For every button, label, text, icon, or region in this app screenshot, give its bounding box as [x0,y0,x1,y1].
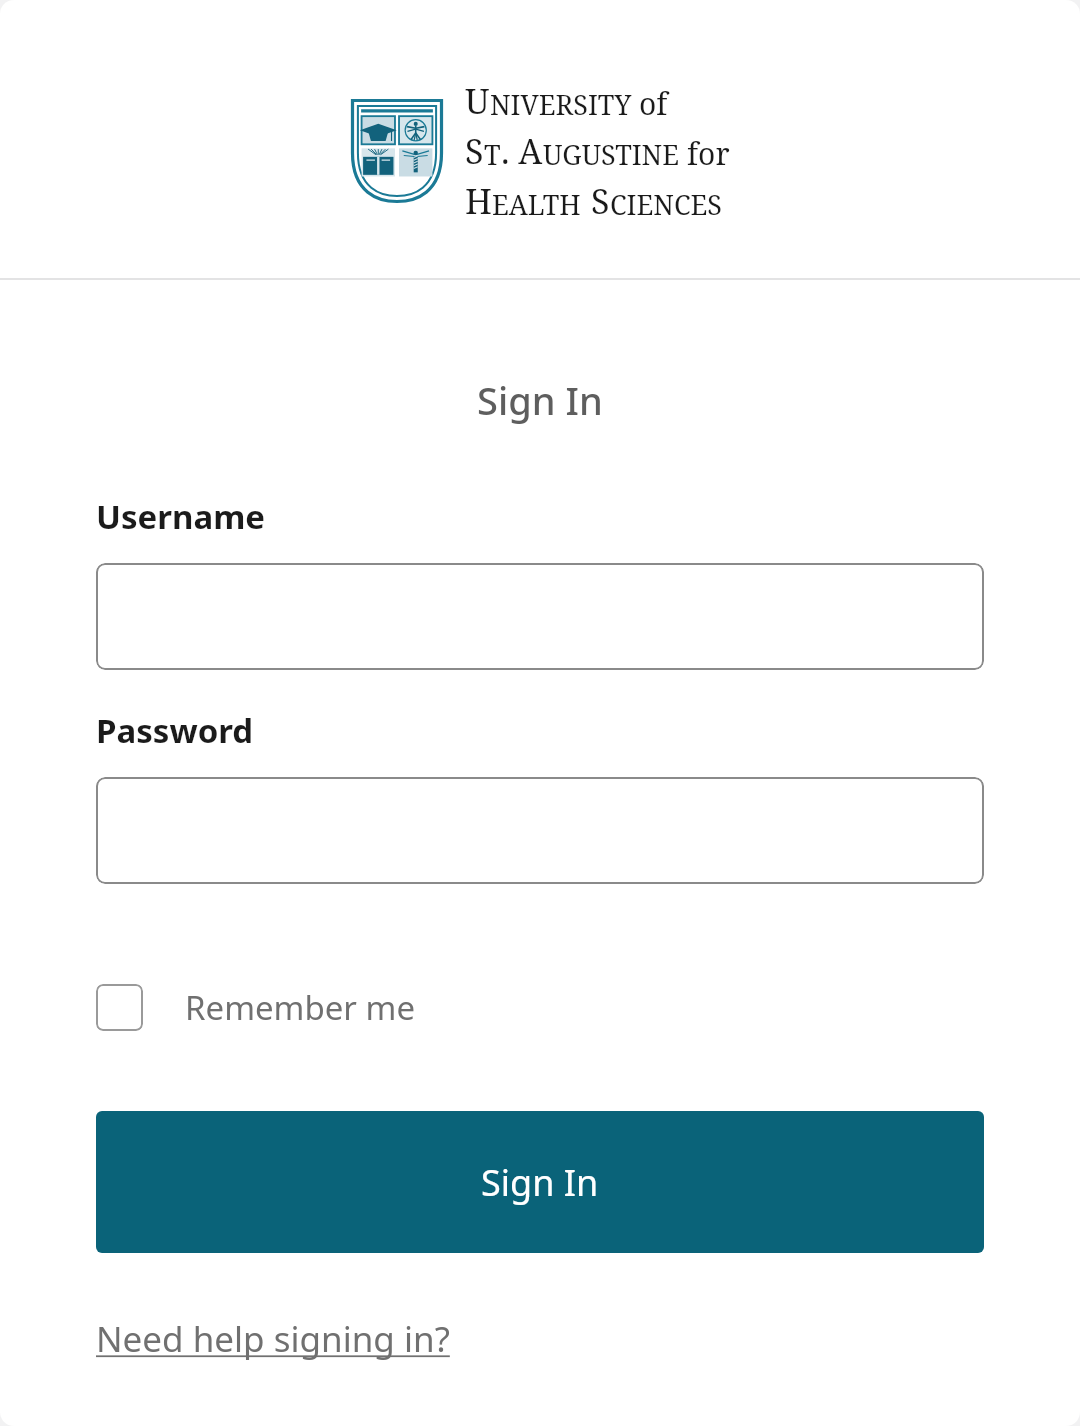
staticText: NIVERSITY [490,86,632,123]
staticText: for [687,133,730,174]
staticText: S [591,178,610,224]
button[interactable]: Text input field [96,563,984,670]
staticText: . A [501,128,543,174]
staticText: U [465,78,490,124]
staticText: CIENCES [610,186,722,223]
other: University of St. Augustine for Health S… [351,99,443,203]
staticText: Need help signing in? [96,1315,450,1363]
button[interactable]: Text input field [96,777,984,884]
staticText: Remember me [185,985,416,1030]
staticText: Sign In [477,374,603,426]
button[interactable]: Need help signing in? [96,1315,450,1363]
staticText: H [465,178,492,224]
staticText: Sign In [481,1158,599,1207]
button[interactable]: Remember me [96,980,416,1035]
staticText: Username [96,494,266,539]
staticText: of [639,83,668,124]
staticText: T [484,136,501,173]
staticText: UGUSTINE [543,136,680,173]
staticText: S [465,128,484,174]
staticText: EALTH [492,186,581,223]
button[interactable]: Sign In [96,1111,984,1253]
staticText: Password [96,708,254,753]
